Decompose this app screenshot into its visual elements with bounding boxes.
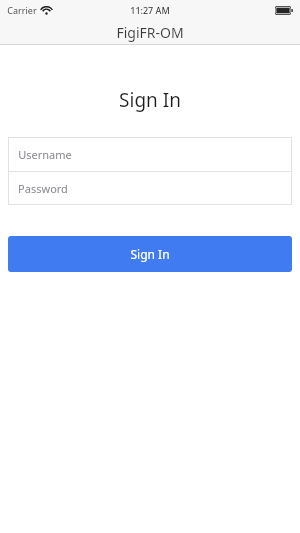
staticText: Sign In — [130, 246, 170, 262]
staticText: 11:27 AM — [130, 4, 170, 16]
staticText: Password — [18, 181, 68, 196]
staticText: Sign In — [119, 87, 181, 113]
button[interactable]: Username — [8, 137, 292, 171]
button[interactable]: Sign In — [8, 236, 292, 272]
staticText: FigiFR-OM — [116, 23, 184, 42]
button[interactable]: Password — [8, 172, 292, 205]
staticText: Username — [18, 147, 72, 162]
staticText: Carrier — [7, 4, 37, 16]
